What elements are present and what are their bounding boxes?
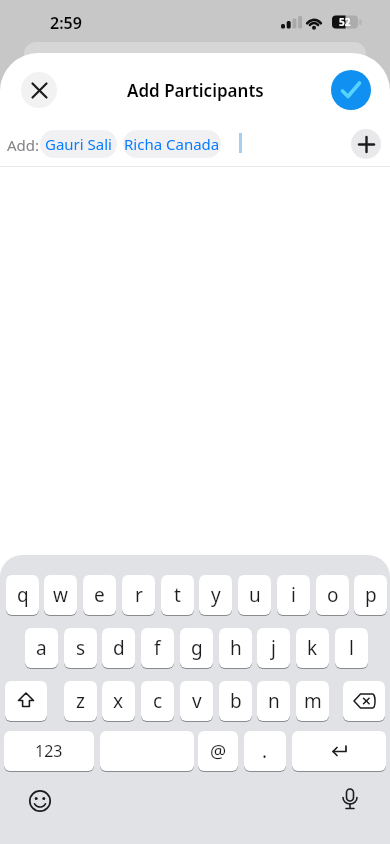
- button[interactable]: d: [102, 628, 135, 668]
- button[interactable]: 123: [4, 731, 94, 771]
- staticText: 123: [35, 740, 63, 762]
- button[interactable]: p: [354, 575, 387, 615]
- button[interactable]: u: [238, 575, 271, 615]
- staticText: u: [249, 582, 261, 608]
- button[interactable]: m: [296, 681, 329, 721]
- staticText: @: [210, 739, 227, 764]
- staticText: Richa Canada: [124, 134, 220, 154]
- button[interactable]: i: [277, 575, 310, 615]
- staticText: g: [191, 635, 203, 661]
- staticText: h: [230, 635, 242, 661]
- button[interactable]: w: [44, 575, 77, 615]
- button[interactable]: Richa Canada: [123, 130, 221, 158]
- button[interactable]: y: [199, 575, 232, 615]
- button[interactable]: e: [83, 575, 116, 615]
- staticText: e: [94, 582, 105, 608]
- button[interactable]: [21, 72, 57, 108]
- staticText: m: [304, 688, 322, 714]
- button[interactable]: [339, 787, 361, 815]
- staticText: j: [271, 635, 276, 661]
- staticText: s: [76, 635, 86, 661]
- staticText: n: [268, 688, 280, 714]
- staticText: x: [113, 688, 124, 714]
- staticText: c: [153, 688, 163, 714]
- staticText: q: [17, 582, 29, 608]
- staticText: Add Participants: [127, 79, 264, 102]
- button[interactable]: x: [102, 681, 135, 721]
- button[interactable]: [351, 129, 381, 159]
- staticText: w: [53, 582, 68, 608]
- button[interactable]: n: [257, 681, 290, 721]
- button[interactable]: g: [180, 628, 213, 668]
- button[interactable]: s: [64, 628, 97, 668]
- button[interactable]: o: [316, 575, 349, 615]
- staticText: d: [113, 635, 125, 661]
- button[interactable]: t: [161, 575, 194, 615]
- staticText: y: [211, 582, 221, 608]
- staticText: k: [307, 635, 318, 661]
- staticText: a: [36, 635, 47, 661]
- button[interactable]: j: [257, 628, 290, 668]
- staticText: 2:59: [50, 12, 82, 34]
- button[interactable]: h: [219, 628, 252, 668]
- button[interactable]: @: [198, 731, 238, 771]
- button[interactable]: [292, 731, 386, 771]
- button[interactable]: r: [122, 575, 155, 615]
- button[interactable]: k: [296, 628, 329, 668]
- button[interactable]: a: [25, 628, 58, 668]
- staticText: Add:: [7, 135, 40, 155]
- staticText: 52: [339, 15, 351, 29]
- button[interactable]: [28, 789, 52, 813]
- staticText: i: [291, 582, 296, 608]
- button[interactable]: [5, 681, 47, 721]
- staticText: l: [349, 635, 354, 661]
- staticText: Gauri Sali: [45, 134, 112, 154]
- staticText: z: [76, 688, 85, 714]
- button[interactable]: z: [64, 681, 97, 721]
- staticText: o: [327, 582, 339, 608]
- button[interactable]: q: [6, 575, 39, 615]
- staticText: t: [174, 582, 181, 608]
- button[interactable]: Gauri Sali: [40, 130, 117, 158]
- button[interactable]: v: [180, 681, 213, 721]
- staticText: b: [230, 688, 242, 714]
- button[interactable]: f: [141, 628, 174, 668]
- staticText: r: [135, 582, 143, 608]
- button[interactable]: [100, 731, 194, 771]
- button[interactable]: b: [219, 681, 252, 721]
- button[interactable]: [331, 70, 371, 110]
- staticText: v: [192, 688, 202, 714]
- button[interactable]: l: [335, 628, 368, 668]
- staticText: .: [262, 738, 268, 764]
- staticText: p: [365, 582, 377, 608]
- staticText: f: [154, 635, 161, 661]
- button[interactable]: [343, 681, 385, 721]
- button[interactable]: .: [244, 731, 286, 771]
- button[interactable]: c: [141, 681, 174, 721]
